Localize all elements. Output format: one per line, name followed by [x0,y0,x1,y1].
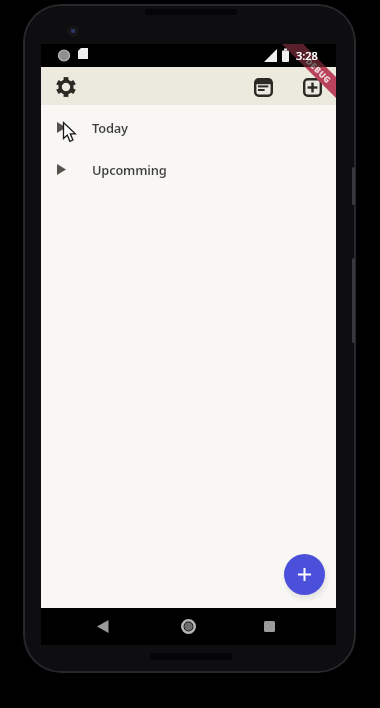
button[interactable] [51,72,80,101]
staticText: 3:28 [296,48,318,63]
button[interactable] [284,554,325,595]
button[interactable] [249,73,278,102]
button[interactable] [249,608,290,645]
staticText: Upcomming [92,161,167,178]
button[interactable] [82,608,123,645]
button[interactable] [168,608,209,645]
staticText: DEBUG [304,55,334,86]
button[interactable] [298,73,327,102]
staticText: Today [92,119,128,136]
button[interactable]: Upcomming [41,153,336,185]
button[interactable]: Today [41,111,336,143]
